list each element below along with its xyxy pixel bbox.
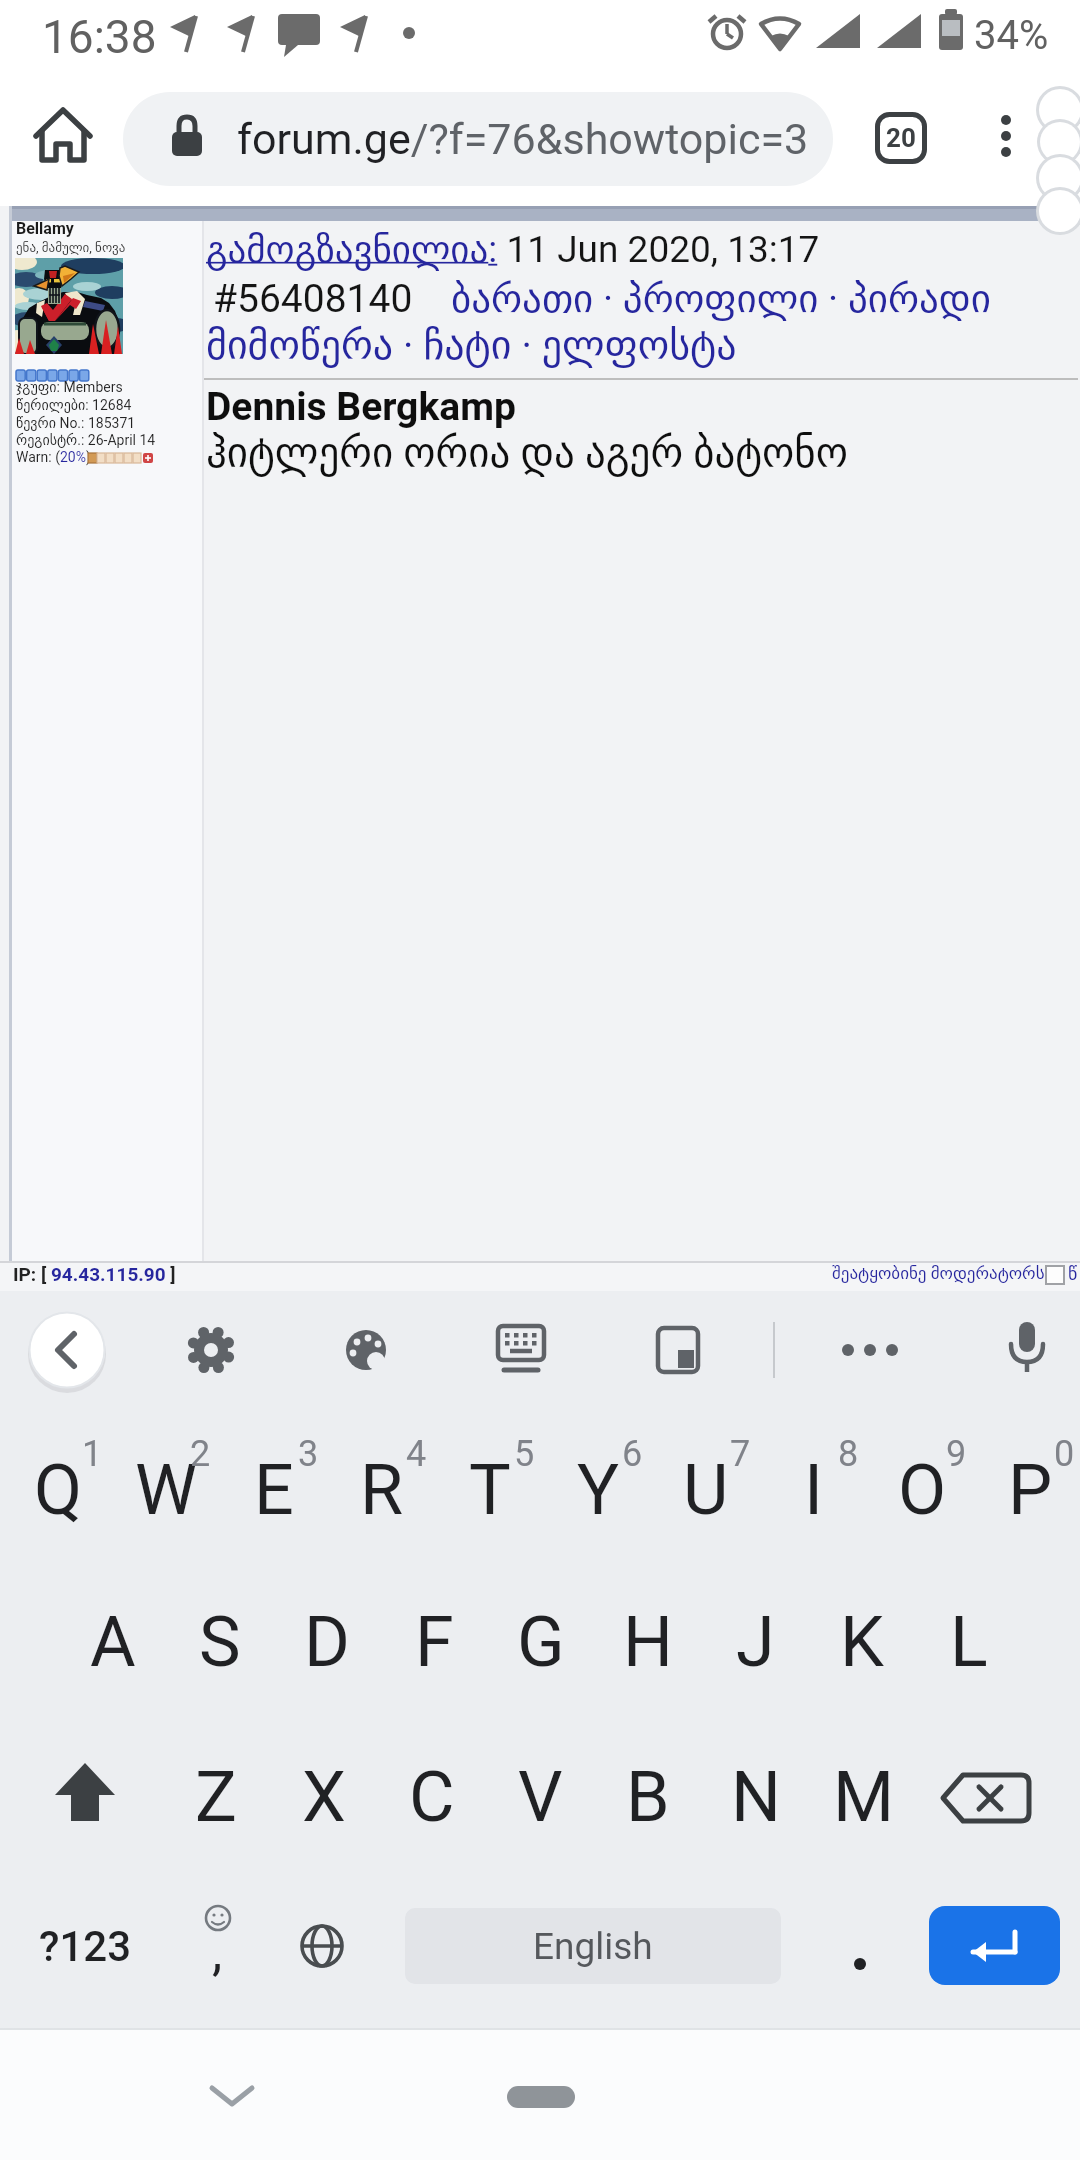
staticText: Bellamy	[16, 219, 74, 238]
button[interactable]: N	[702, 1745, 810, 1849]
staticText: წ	[1068, 1263, 1078, 1284]
staticText: English	[533, 1925, 653, 1968]
staticText: G	[517, 1601, 565, 1683]
staticText: მიმოწერა · ჩატი · ელფოსტა	[206, 322, 737, 369]
button[interactable]: V	[486, 1745, 594, 1849]
button[interactable]: C	[378, 1745, 486, 1849]
button[interactable]: M	[810, 1745, 918, 1849]
button[interactable]: R	[328, 1438, 436, 1542]
button[interactable]: G	[487, 1590, 595, 1694]
button[interactable]	[840, 1320, 900, 1380]
button[interactable]	[31, 1745, 139, 1849]
staticText: J	[736, 1601, 775, 1683]
button[interactable]	[984, 102, 1028, 172]
button[interactable]: X	[270, 1745, 378, 1849]
button[interactable]: K	[808, 1590, 916, 1694]
button[interactable]: 20	[875, 112, 927, 164]
staticText: 3	[298, 1433, 319, 1475]
button[interactable]: P	[976, 1438, 1080, 1542]
button[interactable]	[181, 1320, 241, 1380]
staticText: R	[360, 1449, 404, 1531]
button[interactable]: English	[405, 1908, 781, 1984]
button[interactable]: Y	[544, 1438, 652, 1542]
button[interactable]: ?123	[20, 1896, 150, 1996]
staticText: შეატყობინე მოდერატორს	[832, 1263, 1045, 1283]
staticText: ,	[212, 1922, 223, 1983]
staticText: 7	[730, 1433, 751, 1475]
staticText: რეგისტრ.: 26-April 14	[16, 432, 156, 448]
button[interactable]	[929, 1906, 1060, 1985]
button[interactable]: S	[166, 1590, 274, 1694]
button[interactable]: T	[436, 1438, 544, 1542]
button[interactable]: A	[59, 1590, 167, 1694]
staticText: 5	[514, 1433, 535, 1475]
button[interactable]: გამოგზავნილია: 11 Jun 2020, 13:17	[206, 228, 820, 271]
staticText: ენა, მამული, ნოვა	[16, 240, 126, 255]
staticText: T	[469, 1449, 511, 1531]
button[interactable]: Z	[162, 1745, 270, 1849]
button[interactable]	[997, 1318, 1057, 1378]
staticText: U	[683, 1449, 729, 1531]
button[interactable]: I	[760, 1438, 868, 1542]
button[interactable]: მიმოწერა · ჩატი · ელფოსტა	[206, 322, 737, 369]
staticText: IP: [ 94.43.115.90 ]	[13, 1263, 176, 1285]
button[interactable]	[648, 1320, 708, 1380]
staticText: L	[950, 1601, 988, 1683]
button[interactable]: U	[652, 1438, 760, 1542]
staticText: M	[833, 1756, 895, 1838]
staticText: 2	[190, 1433, 211, 1475]
button[interactable]: forum.ge/?f=76&showtopic=3	[123, 92, 833, 186]
staticText: S	[199, 1601, 241, 1683]
staticText: წევრი No.: 185371	[16, 415, 136, 431]
button[interactable]: J	[701, 1590, 809, 1694]
button[interactable]: #56408140 ბარათი · პროფილი · პირადი	[213, 276, 991, 322]
button[interactable]	[820, 1896, 900, 1996]
staticText: O	[898, 1449, 947, 1531]
button[interactable]	[28, 100, 98, 170]
button[interactable]	[336, 1320, 396, 1380]
staticText: X	[302, 1756, 346, 1838]
button[interactable]: შეატყობინე მოდერატორს	[832, 1263, 1045, 1283]
button[interactable]: Q	[4, 1438, 112, 1542]
button[interactable]: E	[220, 1438, 328, 1542]
button[interactable]	[282, 1906, 362, 1986]
button[interactable]: H	[594, 1590, 702, 1694]
staticText: 8	[838, 1433, 859, 1475]
button[interactable]: ,	[170, 1896, 270, 1996]
button[interactable]: O	[868, 1438, 976, 1542]
staticText: Z	[195, 1756, 237, 1838]
staticText: ჰიტლერი ორია და აგერ ბატონო	[206, 429, 848, 477]
staticText: C	[409, 1756, 455, 1838]
staticText: Q	[34, 1449, 83, 1531]
staticText: 34%	[974, 12, 1049, 59]
staticText: Warn: (20%)	[16, 449, 91, 465]
button[interactable]	[29, 1312, 105, 1388]
staticText: N	[731, 1756, 781, 1838]
button[interactable]	[491, 1320, 551, 1380]
button[interactable]: D	[273, 1590, 381, 1694]
staticText: 16:38	[42, 10, 157, 64]
button[interactable]: L	[915, 1590, 1023, 1694]
staticText: 9	[946, 1433, 967, 1475]
staticText: V	[518, 1756, 563, 1838]
staticText: 6	[622, 1433, 643, 1475]
staticText: D	[304, 1601, 350, 1683]
button[interactable]: F	[380, 1590, 488, 1694]
button[interactable]: W	[112, 1438, 220, 1542]
staticText: Y	[577, 1449, 620, 1531]
staticText: 0	[1054, 1433, 1075, 1475]
staticText: H	[623, 1601, 673, 1683]
staticText: წერილები: 12684	[16, 397, 132, 413]
staticText: 1	[82, 1433, 103, 1475]
button[interactable]	[1046, 1266, 1064, 1284]
staticText: K	[840, 1601, 884, 1683]
staticText: ?123	[39, 1922, 132, 1971]
button[interactable]	[507, 2086, 575, 2108]
staticText: E	[254, 1449, 294, 1531]
button[interactable]	[941, 1745, 1049, 1849]
button[interactable]	[192, 2068, 272, 2128]
button[interactable]: B	[594, 1745, 702, 1849]
staticText: B	[626, 1756, 670, 1838]
staticText: გამოგზავნილია: 11 Jun 2020, 13:17	[206, 228, 820, 271]
staticText: W	[135, 1449, 198, 1531]
